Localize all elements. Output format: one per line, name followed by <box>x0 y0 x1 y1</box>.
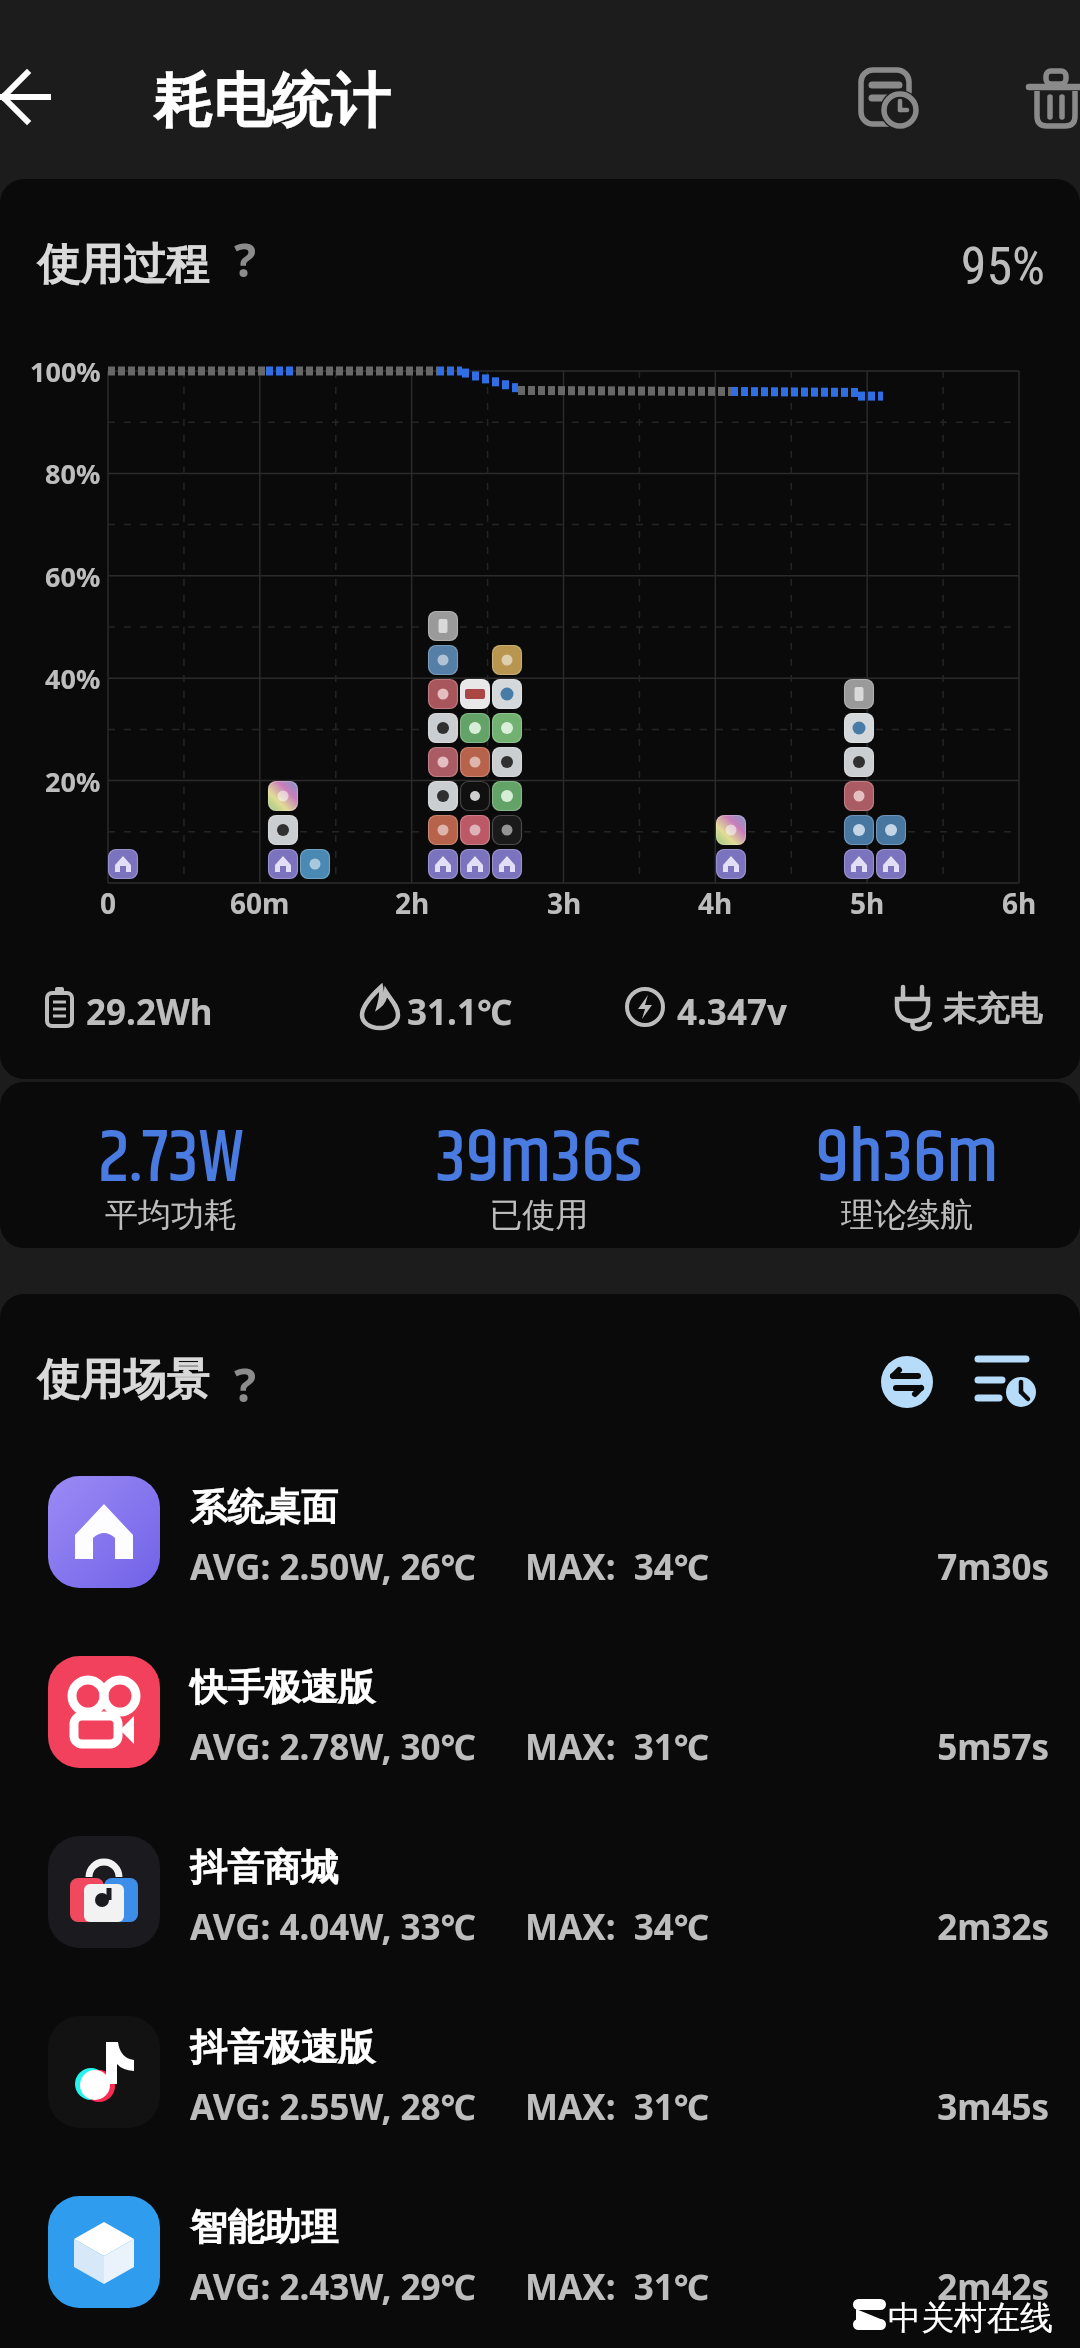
staticText: AVG: 4.04W, 33℃ <box>190 1903 476 1951</box>
staticText: 0 <box>100 884 117 922</box>
staticText: ? <box>234 228 256 278</box>
staticText: 29.2Wh <box>86 988 213 1036</box>
staticText: AVG: 2.43W, 29℃ <box>190 2263 476 2311</box>
staticText: MAX: 34℃ <box>525 1543 709 1591</box>
staticText: 7m30s <box>800 1543 1049 1595</box>
staticText: 使用场景 <box>37 1353 209 1407</box>
button[interactable]: 抖音极速版 <box>0 2000 1080 2150</box>
staticText: 快手极速版 <box>190 1664 375 1711</box>
button[interactable]: 快手极速版 <box>0 1640 1080 1790</box>
staticText: MAX: 34℃ <box>525 1903 709 1951</box>
staticText: 20% <box>45 763 101 800</box>
staticText: 9h36m <box>727 1102 1080 1217</box>
staticText: 4h <box>698 884 733 922</box>
staticText: 使用过程 <box>37 238 209 292</box>
staticText: 智能助理 <box>190 2204 338 2251</box>
staticText: 5m57s <box>800 1723 1049 1775</box>
staticText: 31.1℃ <box>407 988 513 1036</box>
staticText: 4.347v <box>677 988 787 1036</box>
staticText: 80% <box>45 455 101 492</box>
staticText: 已使用 <box>359 1194 719 1236</box>
button[interactable]: ? <box>224 226 274 276</box>
staticText: AVG: 2.78W, 30℃ <box>190 1723 476 1771</box>
staticText: 2.73W <box>0 1102 351 1217</box>
staticText: 未充电 <box>943 988 1042 1030</box>
staticText: 40% <box>45 660 101 697</box>
button[interactable]: History <box>855 64 925 134</box>
button[interactable]: ? <box>224 1351 274 1401</box>
button[interactable]: Sort by power <box>881 1356 933 1408</box>
button[interactable]: 智能助理 <box>0 2180 1080 2330</box>
staticText: 2h <box>395 884 430 922</box>
staticText: AVG: 2.55W, 28℃ <box>190 2083 476 2131</box>
staticText: 系统桌面 <box>190 1484 338 1531</box>
staticText: 2m32s <box>800 1903 1049 1955</box>
staticText: AVG: 2.50W, 26℃ <box>190 1543 476 1591</box>
staticText: 60% <box>45 558 101 595</box>
staticText: 3h <box>547 884 582 922</box>
staticText: 60m <box>230 884 290 922</box>
staticText: 6h <box>1002 884 1037 922</box>
staticText: 3m45s <box>800 2083 1049 2135</box>
staticText: 中关村在线 <box>888 2297 1053 2339</box>
button[interactable]: Delete <box>1027 64 1080 134</box>
staticText: ? <box>234 1353 256 1403</box>
staticText: 39m36s <box>359 1102 719 1217</box>
button[interactable]: 9h36m <box>727 1082 1080 1248</box>
button[interactable]: Sort by time <box>974 1351 1040 1417</box>
staticText: MAX: 31℃ <box>525 2263 709 2311</box>
button[interactable]: 抖音商城 <box>0 1820 1080 1970</box>
staticText: 抖音商城 <box>190 1844 338 1891</box>
staticText: 95% <box>895 236 1045 306</box>
staticText: 理论续航 <box>727 1194 1080 1236</box>
staticText: MAX: 31℃ <box>525 1723 709 1771</box>
staticText: 2m42s <box>800 2263 1049 2315</box>
staticText: 抖音极速版 <box>190 2024 375 2071</box>
staticText: MAX: 31℃ <box>525 2083 709 2131</box>
staticText: 5h <box>850 884 885 922</box>
button[interactable]: 系统桌面 <box>0 1460 1080 1610</box>
staticText: 耗电统计 <box>154 64 390 138</box>
staticText: 100% <box>30 353 101 390</box>
button[interactable]: 39m36s <box>359 1082 719 1248</box>
button[interactable]: Back <box>0 50 72 146</box>
staticText: 平均功耗 <box>0 1194 351 1236</box>
button[interactable]: 2.73W <box>0 1082 351 1248</box>
